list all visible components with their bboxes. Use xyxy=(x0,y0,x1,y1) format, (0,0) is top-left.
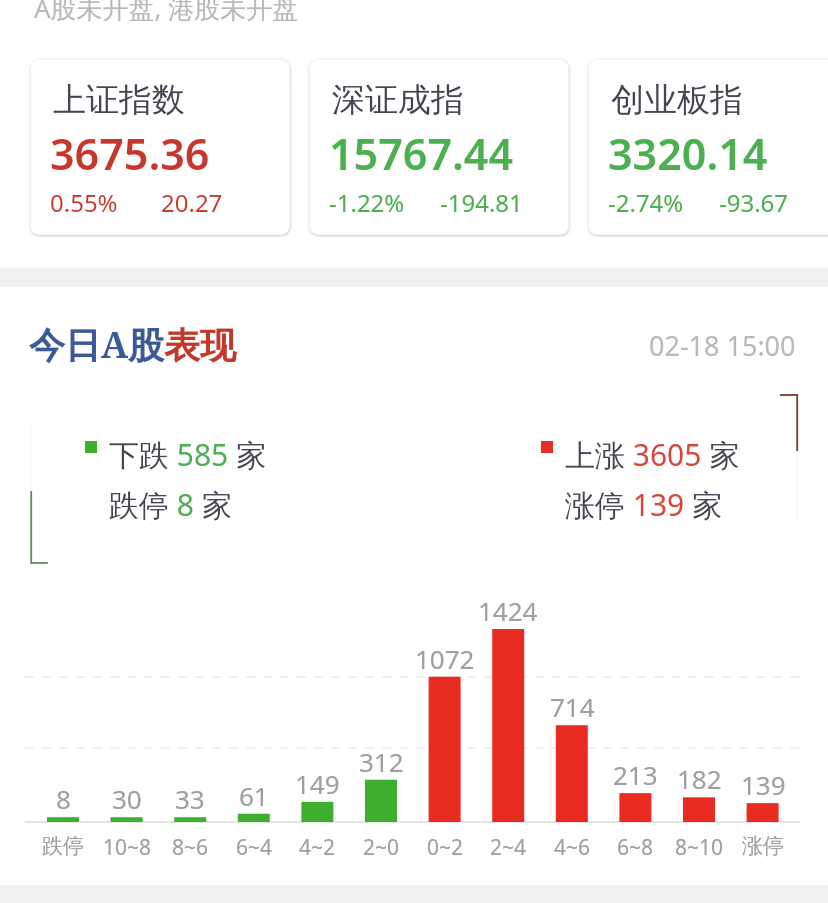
staticText: 182 xyxy=(677,761,722,796)
staticText: 15767.44 xyxy=(329,124,514,183)
staticText: 2~4 xyxy=(490,833,527,862)
staticText: 02-18 15:00 xyxy=(649,327,796,364)
staticText: 深证成指 xyxy=(332,79,464,121)
staticText: 714 xyxy=(550,689,595,724)
staticText: 10~8 xyxy=(103,833,152,862)
button[interactable]: 今日A股表现 xyxy=(0,310,828,372)
staticText: 8~6 xyxy=(172,833,209,862)
staticText: -93.67 xyxy=(719,186,789,219)
staticText: 0~2 xyxy=(427,833,464,862)
staticText: 139 xyxy=(741,767,786,802)
staticText: 8 xyxy=(56,781,71,816)
staticText: 创业板指 xyxy=(611,79,743,121)
staticText: 3320.14 xyxy=(608,124,768,183)
staticText: 2~0 xyxy=(363,833,400,862)
staticText: 上证指数 xyxy=(53,79,185,121)
staticText: 4~2 xyxy=(299,833,336,862)
staticText: 3675.36 xyxy=(50,124,210,183)
staticText: 涨停 xyxy=(742,833,784,859)
staticText: 上涨 3605 家 xyxy=(565,434,740,475)
staticText: 213 xyxy=(613,757,658,792)
staticText: 1072 xyxy=(415,641,475,676)
staticText: 149 xyxy=(295,766,340,801)
staticText: 20.27 xyxy=(161,186,223,219)
staticText: 0.55% xyxy=(50,186,118,219)
button[interactable]: 创业板指 xyxy=(588,59,828,235)
staticText: 33 xyxy=(175,781,205,816)
staticText: 1424 xyxy=(478,593,538,628)
staticText: 61 xyxy=(239,778,269,813)
staticText: 30 xyxy=(112,781,142,816)
button[interactable]: 下跌 585 家 xyxy=(85,434,285,520)
button[interactable]: 深证成指 xyxy=(309,59,569,235)
staticText: 下跌 585 家 xyxy=(109,434,267,475)
staticText: 今日A股表现 xyxy=(29,320,237,369)
staticText: 涨停 139 家 xyxy=(565,484,723,525)
staticText: 跌停 xyxy=(42,833,84,859)
staticText: A股未开盘, 港股未开盘 xyxy=(34,0,299,26)
staticText: 6~8 xyxy=(617,833,654,862)
staticText: 8~10 xyxy=(675,833,724,862)
button[interactable]: 上证指数 xyxy=(30,59,290,235)
staticText: 312 xyxy=(359,744,404,779)
staticText: 跌停 8 家 xyxy=(109,484,232,525)
staticText: -194.81 xyxy=(440,186,523,219)
staticText: -2.74% xyxy=(608,186,684,219)
staticText: 4~6 xyxy=(554,833,591,862)
button[interactable]: 上涨 3605 家 xyxy=(541,434,741,520)
staticText: 6~4 xyxy=(236,833,273,862)
staticText: -1.22% xyxy=(329,186,405,219)
